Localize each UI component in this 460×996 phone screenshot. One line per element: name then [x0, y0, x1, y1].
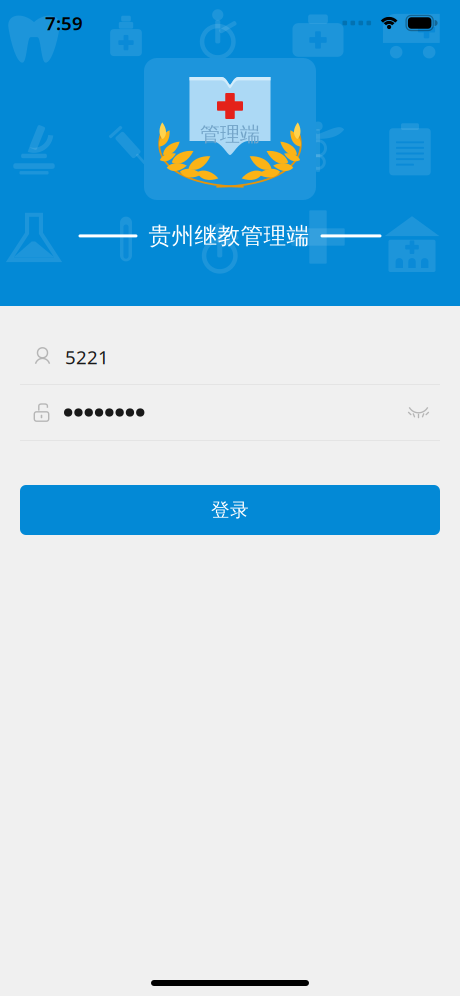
- staticText: 7:59: [45, 11, 83, 35]
- staticText: 登录: [211, 498, 249, 521]
- button[interactable]: 5221: [0, 330, 460, 384]
- button[interactable]: 登录: [20, 485, 440, 535]
- staticText: 贵州继教管理端: [148, 222, 309, 250]
- staticText: 5221: [65, 345, 109, 369]
- staticText: 管理端: [200, 122, 260, 147]
- button[interactable]: Show password: [402, 400, 435, 425]
